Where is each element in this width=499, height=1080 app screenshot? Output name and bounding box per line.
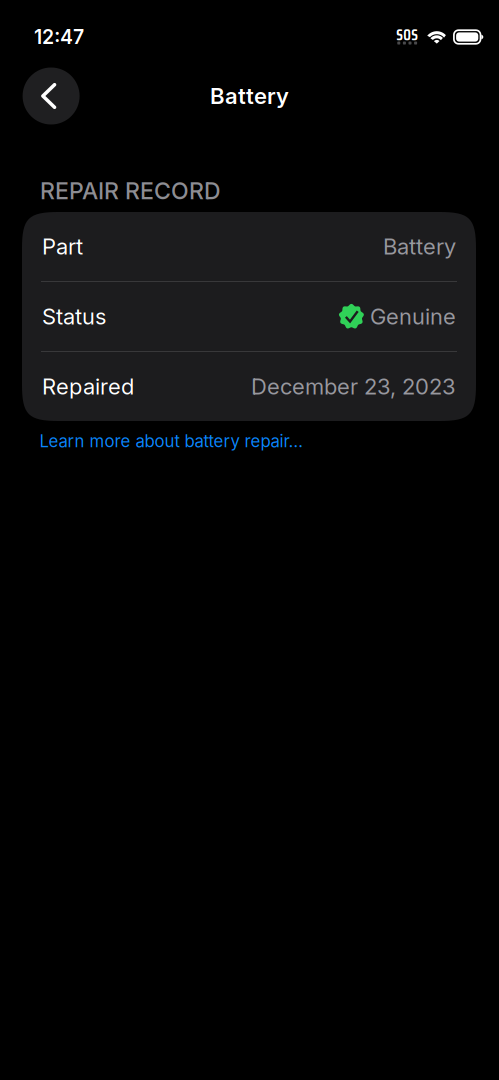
button[interactable]: Part [22, 212, 476, 281]
staticText: SOS [396, 23, 418, 47]
button[interactable]: Status [22, 282, 476, 351]
staticText: Status [42, 303, 106, 330]
button[interactable]: Back [23, 67, 80, 124]
button[interactable]: Repaired [22, 352, 476, 421]
staticText: Battery [210, 83, 289, 109]
staticText: Battery [383, 233, 456, 260]
staticText: Learn more about battery repair… [40, 431, 304, 451]
staticText: Part [42, 233, 83, 260]
staticText: December 23, 2023 [251, 373, 456, 400]
staticText: Repaired [42, 373, 134, 400]
staticText: REPAIR RECORD [40, 177, 221, 205]
button[interactable]: Learn more about battery repair… [0, 0, 304, 451]
staticText: Genuine [370, 303, 456, 330]
staticText: 12:47 [34, 25, 84, 49]
